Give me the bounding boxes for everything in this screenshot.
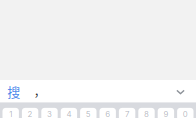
- staticText: 8: [144, 109, 149, 118]
- button[interactable]: 0: [177, 108, 193, 118]
- staticText: ，: [34, 83, 46, 100]
- button[interactable]: 2: [22, 108, 38, 118]
- button[interactable]: 6: [99, 108, 116, 118]
- button[interactable]: ，: [25, 80, 54, 102]
- button[interactable]: 1: [2, 108, 19, 118]
- staticText: 2: [28, 109, 33, 118]
- button[interactable]: 8: [138, 108, 155, 118]
- button[interactable]: 搜: [2, 80, 25, 102]
- button[interactable]: 5: [80, 108, 96, 118]
- button[interactable]: Hide candidate bar: [165, 80, 196, 102]
- staticText: 3: [47, 109, 52, 118]
- button[interactable]: 7: [119, 108, 135, 118]
- button[interactable]: 4: [61, 108, 77, 118]
- staticText: 5: [86, 109, 91, 118]
- staticText: 6: [105, 109, 110, 118]
- staticText: 0: [183, 109, 188, 118]
- staticText: 9: [163, 109, 168, 118]
- button[interactable]: 9: [158, 108, 174, 118]
- staticText: 7: [125, 109, 129, 118]
- staticText: 搜: [7, 82, 20, 101]
- staticText: 4: [66, 109, 71, 118]
- staticText: 1: [9, 109, 12, 118]
- button[interactable]: 3: [41, 108, 58, 118]
